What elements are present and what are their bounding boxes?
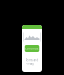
button[interactable]: Continue: [25, 45, 39, 52]
staticText: Terms and Privacy: [25, 58, 38, 66]
staticText: Continue: [25, 47, 39, 50]
